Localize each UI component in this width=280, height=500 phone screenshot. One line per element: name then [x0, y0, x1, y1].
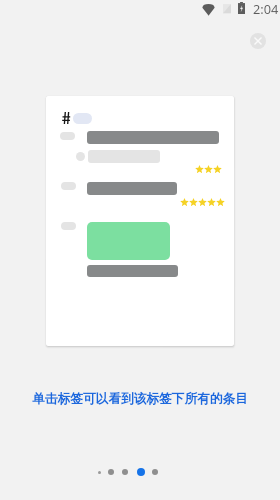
- staticText: 单击标签可以看到该标签下所有的条目: [0, 391, 280, 407]
- staticText: 2:04: [253, 0, 279, 17]
- button[interactable]: Close: [250, 33, 266, 49]
